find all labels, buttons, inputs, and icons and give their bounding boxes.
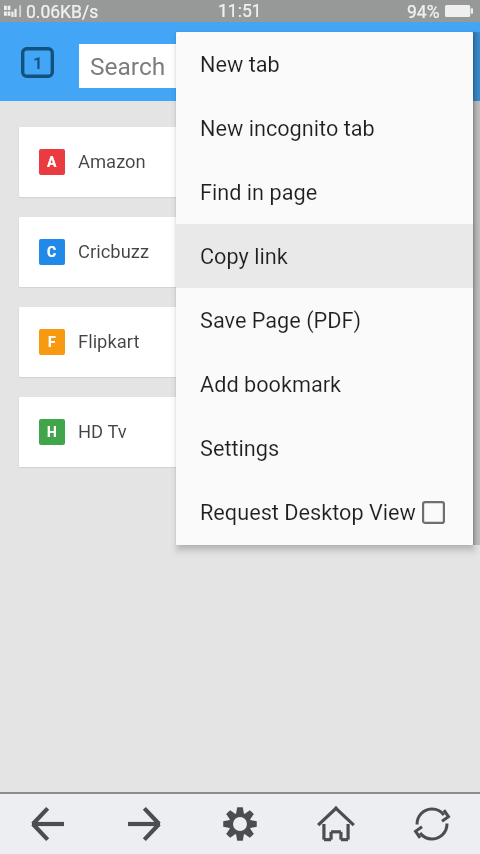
button[interactable]: Request Desktop View xyxy=(176,480,473,544)
button[interactable]: Search xyxy=(79,44,466,88)
staticText: H xyxy=(47,424,57,440)
button[interactable]: Settings xyxy=(192,794,288,854)
staticText: New incognito tab xyxy=(200,116,375,141)
button[interactable]: Back xyxy=(0,794,96,854)
button[interactable]: Tabs xyxy=(21,47,54,78)
staticText: Copy link xyxy=(200,244,288,269)
staticText: 11:51 xyxy=(218,1,262,22)
button[interactable]: Refresh xyxy=(384,794,480,854)
button[interactable]: Settings xyxy=(176,416,473,480)
staticText: New tab xyxy=(200,52,280,77)
button[interactable]: Add bookmark xyxy=(176,352,473,416)
staticText: Save Page (PDF) xyxy=(200,308,362,333)
staticText: Settings xyxy=(200,436,280,461)
button[interactable]: A xyxy=(19,127,461,197)
button[interactable]: New tab xyxy=(176,32,473,96)
button[interactable]: Forward xyxy=(96,794,192,854)
button[interactable]: F xyxy=(19,307,461,377)
staticText: Add bookmark xyxy=(200,372,342,397)
staticText: Request Desktop View xyxy=(200,500,416,525)
button[interactable]: Home xyxy=(288,794,384,854)
staticText: 1 xyxy=(33,53,43,73)
button[interactable]: C xyxy=(19,217,461,287)
button[interactable]: Find in page xyxy=(176,160,473,224)
staticText: Search xyxy=(90,52,166,81)
staticText: A xyxy=(47,154,57,170)
staticText: Flipkart xyxy=(78,331,140,353)
button[interactable]: H xyxy=(19,397,461,467)
staticText: Find in page xyxy=(200,180,318,205)
staticText: F xyxy=(48,334,56,350)
staticText: Cricbuzz xyxy=(78,241,150,263)
staticText: HD Tv xyxy=(78,421,127,443)
staticText: C xyxy=(47,244,57,260)
staticText: 0.06KB/s xyxy=(26,2,99,23)
button[interactable]: New incognito tab xyxy=(176,96,473,160)
button[interactable]: Copy link xyxy=(176,224,473,288)
button[interactable]: Save Page (PDF) xyxy=(176,288,473,352)
staticText: Amazon xyxy=(78,151,146,173)
staticText: 94% xyxy=(407,2,440,23)
